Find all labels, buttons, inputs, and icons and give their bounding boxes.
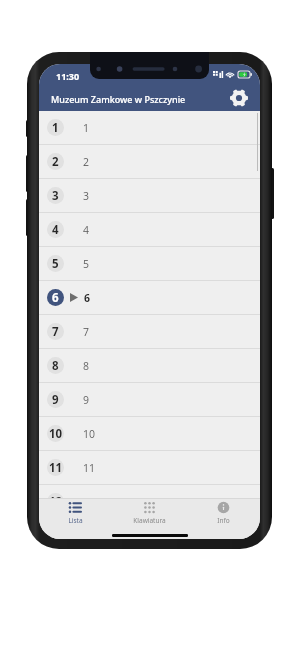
staticText: Muzeum Zamkowe w Pszczynie <box>51 93 186 105</box>
button[interactable]: 7 <box>39 315 260 349</box>
staticText: 7 <box>83 325 90 339</box>
staticText: 11:30 <box>56 70 80 82</box>
staticText: Info <box>217 516 230 525</box>
button[interactable]: Info <box>186 498 260 539</box>
staticText: 12 <box>49 494 63 498</box>
staticText: 6 <box>52 290 59 306</box>
staticText: 6 <box>84 291 91 305</box>
staticText: 8 <box>83 359 90 373</box>
staticText: 2 <box>83 155 90 169</box>
staticText: 11 <box>49 460 63 476</box>
button[interactable]: 10 <box>39 417 260 451</box>
button[interactable]: 3 <box>39 179 260 213</box>
button[interactable]: 2 <box>39 145 260 179</box>
staticText: 5 <box>83 257 90 271</box>
staticText: 4 <box>83 223 90 237</box>
button[interactable]: 4 <box>39 213 260 247</box>
staticText: 10 <box>83 427 96 441</box>
button[interactable]: 11 <box>39 451 260 485</box>
staticText: 9 <box>52 392 59 408</box>
button[interactable]: 12 <box>39 485 260 498</box>
button[interactable]: 9 <box>39 383 260 417</box>
staticText: Lista <box>68 516 83 525</box>
staticText: 1 <box>83 121 90 135</box>
staticText: 11 <box>83 461 96 475</box>
staticText: Klawiatura <box>133 516 166 525</box>
staticText: 1 <box>52 120 59 136</box>
button[interactable]: 6 <box>39 281 260 315</box>
button[interactable]: 5 <box>39 247 260 281</box>
staticText: 9 <box>83 393 90 407</box>
staticText: 10 <box>49 426 63 442</box>
button[interactable]: 1 <box>39 111 260 145</box>
button[interactable]: Klawiatura <box>112 498 186 539</box>
staticText: 5 <box>52 256 59 272</box>
staticText: 2 <box>52 154 59 170</box>
staticText: 4 <box>52 222 59 238</box>
button[interactable]: 8 <box>39 349 260 383</box>
staticText: 3 <box>52 188 59 204</box>
staticText: 7 <box>52 324 59 340</box>
staticText: 8 <box>52 358 59 374</box>
button[interactable]: Settings <box>227 86 251 110</box>
staticText: 3 <box>83 189 90 203</box>
button[interactable]: Lista <box>39 498 112 539</box>
